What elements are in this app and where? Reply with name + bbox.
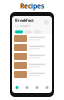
button[interactable] <box>12 61 52 70</box>
button[interactable]: Tab 1 <box>12 83 22 92</box>
button[interactable]: Tab 3 <box>32 83 42 92</box>
button[interactable] <box>12 34 52 43</box>
button[interactable] <box>12 70 52 79</box>
button[interactable] <box>12 52 52 61</box>
staticText: 12 recipes <box>15 24 30 27</box>
staticText: Breakfast <box>15 18 34 23</box>
button[interactable]: Tab 4 <box>42 83 52 92</box>
staticText: Recipes <box>20 2 44 10</box>
button[interactable] <box>12 43 52 52</box>
button[interactable]: Tab 2 <box>22 83 32 92</box>
